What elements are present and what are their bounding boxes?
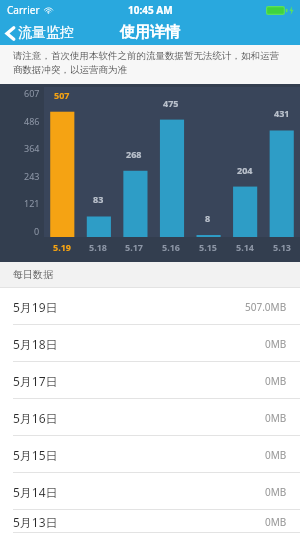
staticText: 8 [205, 212, 211, 224]
staticText: 10:45 AM [128, 3, 173, 17]
button[interactable]: 5月15日 [0, 436, 300, 473]
staticText: 0 [34, 225, 40, 237]
button[interactable]: Back [0, 22, 80, 44]
button[interactable]: 5月17日 [0, 362, 300, 399]
staticText: 364 [24, 142, 40, 154]
staticText: 0MB [265, 374, 287, 388]
staticText: 5.15 [199, 241, 217, 253]
button[interactable]: 5月18日 [0, 325, 300, 362]
staticText: 5.13 [273, 241, 291, 253]
staticText: 486 [24, 115, 40, 127]
other: Back [5, 26, 16, 41]
staticText: 5月19日 [13, 299, 58, 315]
staticText: 0MB [265, 485, 287, 499]
staticText: 5月13日 [13, 514, 58, 530]
staticText: 204 [237, 164, 253, 176]
staticText: 0MB [265, 337, 287, 351]
staticText: 243 [24, 170, 40, 182]
staticText: 每日数据 [13, 268, 53, 281]
staticText: 5月16日 [13, 410, 58, 426]
staticText: 121 [24, 197, 40, 209]
staticText: 5月18日 [13, 336, 58, 352]
staticText: 5.16 [162, 241, 180, 253]
staticText: 5月14日 [13, 484, 58, 500]
staticText: 5.14 [236, 241, 254, 253]
staticText: 5月15日 [13, 447, 58, 463]
staticText: 5.18 [89, 241, 107, 253]
staticText: 83 [93, 193, 104, 205]
staticText: 0MB [265, 515, 287, 529]
staticText: 607 [24, 87, 40, 99]
staticText: 流量监控 [18, 24, 74, 42]
button[interactable]: 5月16日 [0, 399, 300, 436]
button[interactable]: 5月19日 [0, 288, 300, 325]
staticText: 268 [126, 148, 142, 160]
staticText: 0MB [265, 411, 287, 425]
staticText: 475 [163, 97, 179, 109]
staticText: 5月17日 [13, 373, 58, 389]
staticText: 507.0MB [245, 300, 287, 314]
staticText: 使用详情 [120, 23, 180, 42]
button[interactable]: 5月14日 [0, 473, 300, 510]
staticText: 431 [274, 107, 290, 119]
staticText: Carrier [7, 3, 40, 17]
staticText: 507 [54, 89, 70, 101]
staticText: 请注意，首次使用本软件之前的流量数据暂无法统计，如和运营商数据冲突，以运营商为准 [13, 50, 287, 76]
staticText: 5.17 [125, 241, 143, 253]
staticText: 0MB [265, 448, 287, 462]
button[interactable]: 5月13日 [0, 510, 300, 533]
staticText: 5.19 [53, 241, 71, 253]
